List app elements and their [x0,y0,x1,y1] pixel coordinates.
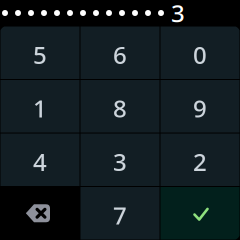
staticText: 3 [113,146,127,178]
staticText: 1 [33,92,47,124]
button[interactable]: 2 [160,133,240,186]
button[interactable]: 8 [80,79,160,133]
staticText: 0 [193,39,207,71]
staticText: 7 [113,199,127,231]
staticText: 2 [193,146,207,178]
button[interactable]: 0 [160,26,240,79]
staticText: 3 [171,0,185,29]
button[interactable]: 6 [80,26,160,79]
staticText: 6 [113,39,127,71]
button[interactable]: Confirm [160,186,240,240]
staticText: 9 [193,92,207,124]
button[interactable]: 4 [0,133,80,186]
button[interactable]: 1 [0,79,80,133]
staticText: 4 [33,146,47,178]
button[interactable]: 5 [0,26,80,79]
button[interactable]: 3 [80,133,160,186]
button[interactable]: Delete [0,186,80,240]
button[interactable]: 7 [80,186,160,240]
button[interactable]: 9 [160,79,240,133]
staticText: 8 [113,92,127,124]
staticText: 5 [33,39,47,71]
